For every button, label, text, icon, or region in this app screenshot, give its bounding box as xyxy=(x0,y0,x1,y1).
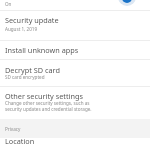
button[interactable]: Decrypt SD card xyxy=(0,60,150,86)
staticText: security updates and credential storage. xyxy=(5,106,92,112)
staticText: SD card encrypted xyxy=(5,74,45,80)
staticText: Install unknown apps xyxy=(5,45,79,55)
staticText: Change other security settings, such as xyxy=(5,100,90,106)
staticText: Privacy xyxy=(5,126,21,132)
staticText: Decrypt SD card xyxy=(5,65,60,75)
staticText: Security update xyxy=(5,15,59,25)
button[interactable]: Toggle switch xyxy=(118,0,136,6)
staticText: On xyxy=(5,1,12,7)
staticText: August 1, 2019 xyxy=(5,26,38,32)
staticText: Location xyxy=(5,136,35,146)
staticText: Other security settings xyxy=(5,91,83,101)
button[interactable]: Other security settings xyxy=(0,87,150,119)
button[interactable]: Install unknown apps xyxy=(0,40,150,58)
button[interactable]: Security update xyxy=(0,10,150,39)
button[interactable]: Location xyxy=(0,134,150,150)
